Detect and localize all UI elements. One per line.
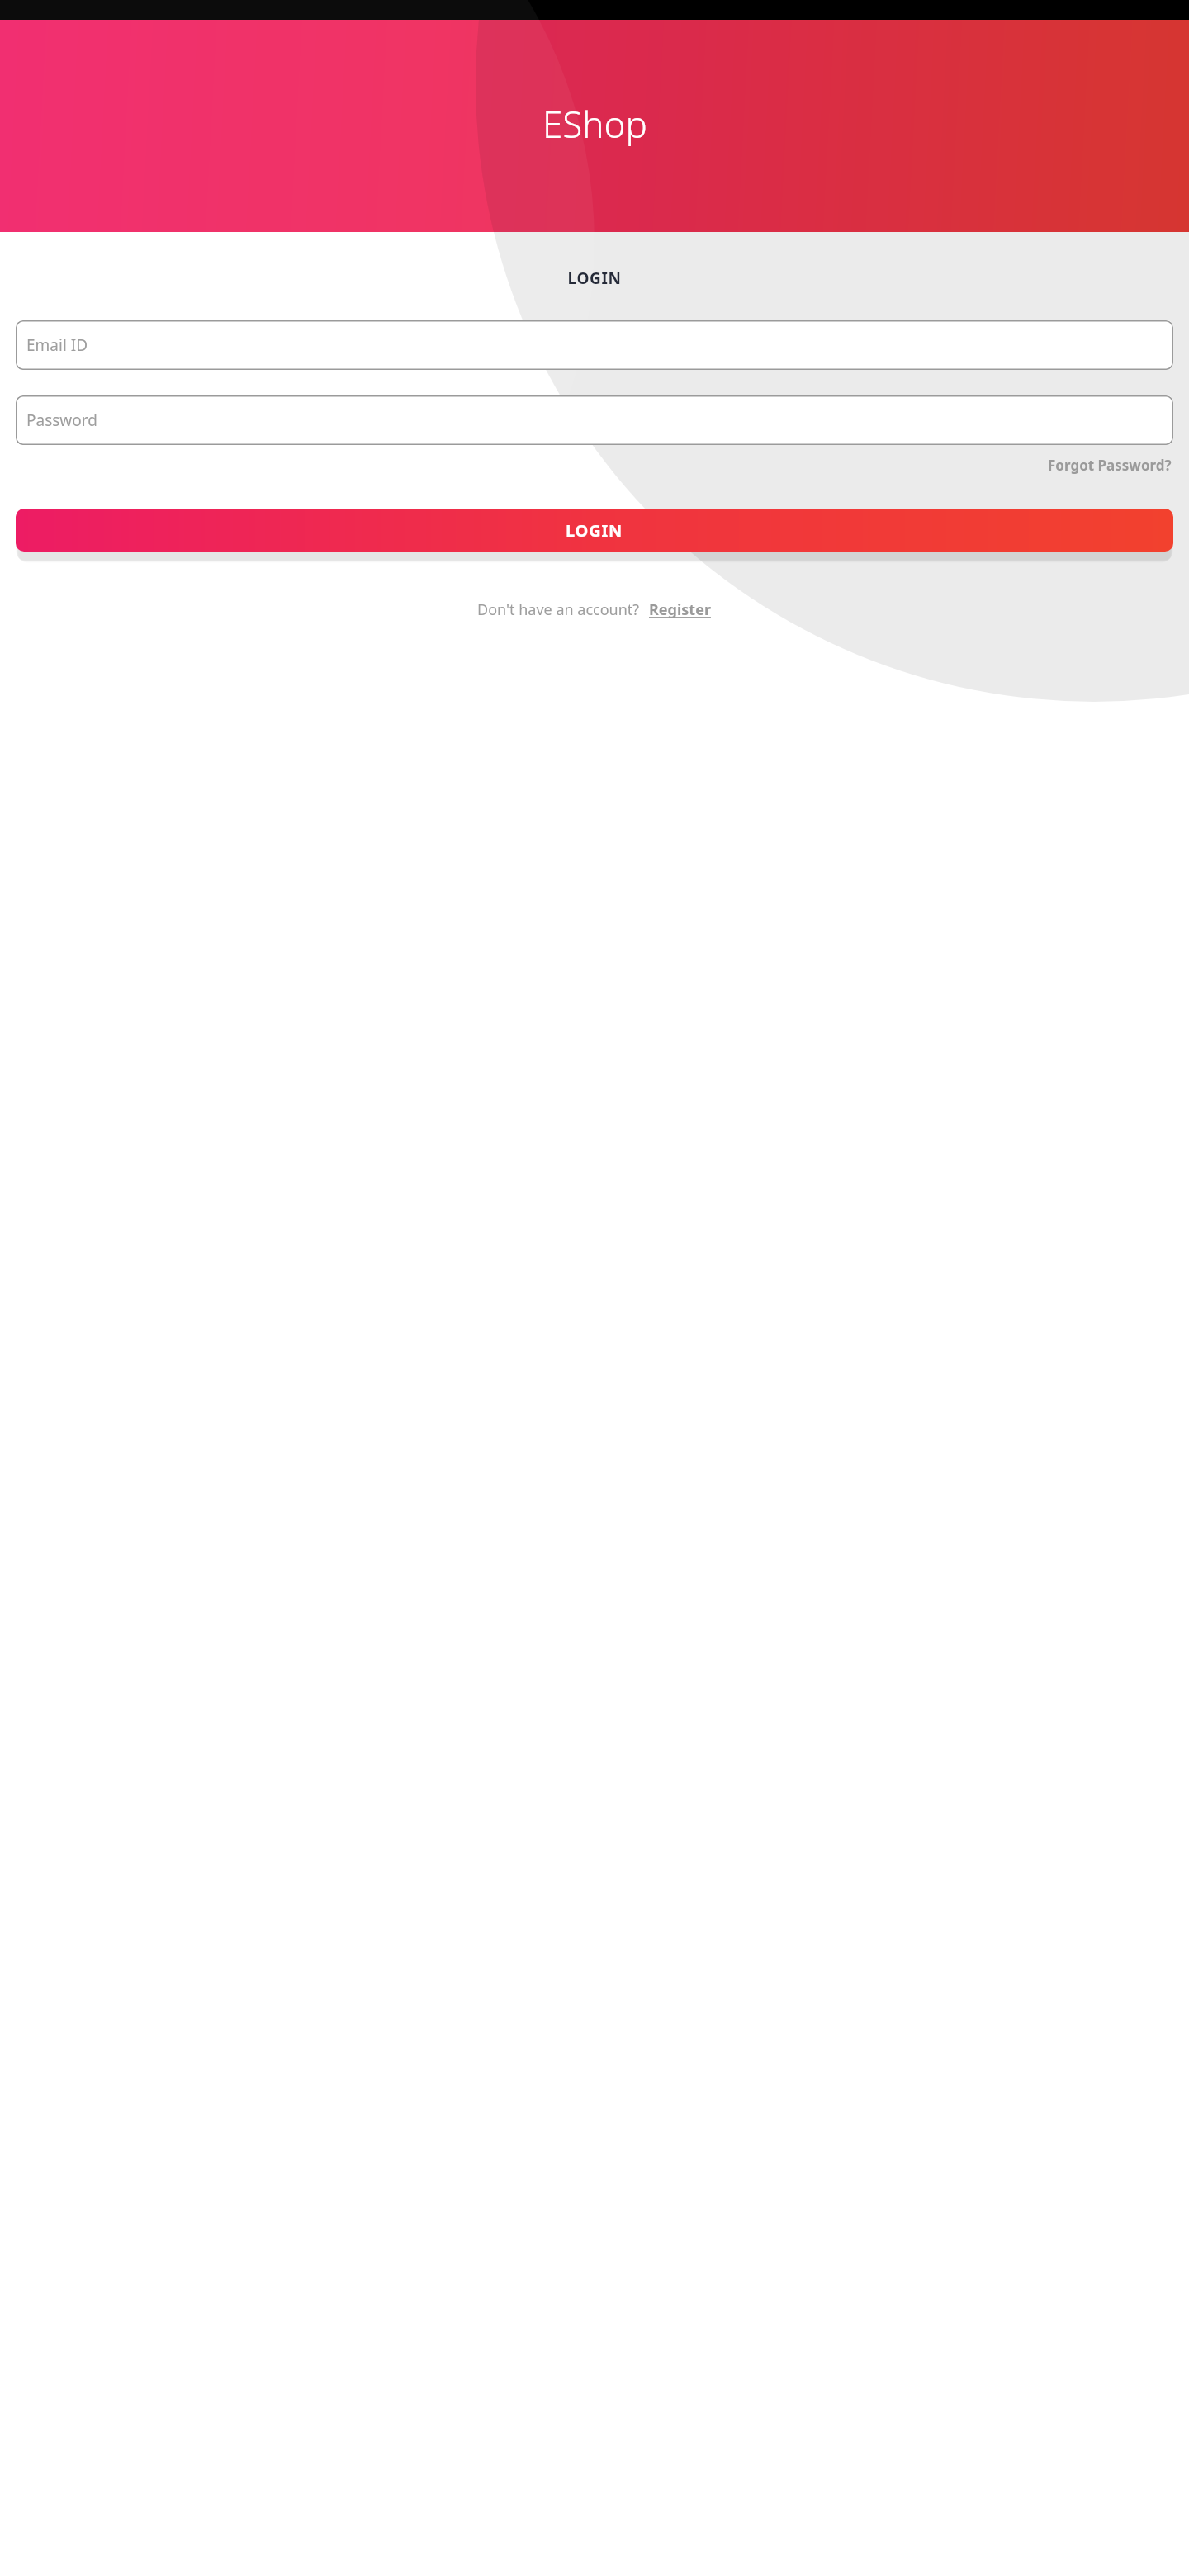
button[interactable]: Password bbox=[16, 395, 1173, 445]
staticText: Don't have an account? bbox=[477, 599, 640, 620]
staticText: LOGIN bbox=[16, 268, 1173, 289]
button[interactable]: Email ID bbox=[16, 320, 1173, 370]
staticText: LOGIN bbox=[566, 519, 623, 542]
button[interactable]: Forgot Password? bbox=[1046, 452, 1173, 478]
staticText: EShop bbox=[542, 99, 647, 149]
button[interactable]: Register bbox=[647, 597, 713, 623]
staticText: Email ID bbox=[26, 334, 88, 356]
staticText: Password bbox=[26, 410, 97, 431]
button[interactable]: LOGIN bbox=[16, 509, 1173, 552]
